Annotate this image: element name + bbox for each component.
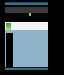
button[interactable] xyxy=(5,2,48,5)
